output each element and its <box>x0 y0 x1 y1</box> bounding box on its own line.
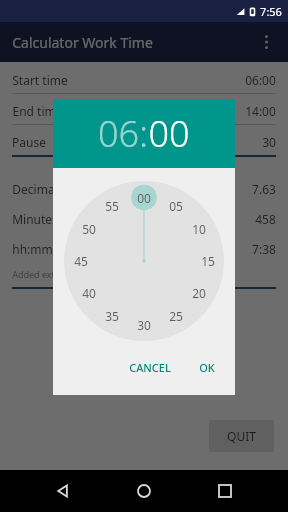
staticText: 7.63 <box>252 181 276 197</box>
staticText: 45 <box>74 253 88 269</box>
staticText: 10 <box>192 221 206 237</box>
staticText: 05 <box>169 198 183 214</box>
staticText: 06:00 <box>245 72 276 88</box>
staticText: OK <box>199 360 215 375</box>
staticText: 30 <box>137 317 151 333</box>
staticText: 30 <box>262 134 276 150</box>
button[interactable]: 10 <box>187 217 211 241</box>
staticText: 7:56 <box>260 4 282 19</box>
staticText: 458 <box>255 211 276 227</box>
button[interactable]: 50 <box>77 217 101 241</box>
button[interactable]: 20 <box>187 281 211 305</box>
staticText: 25 <box>169 308 183 324</box>
button[interactable]: Back <box>45 473 81 509</box>
button[interactable]: 05 <box>164 194 188 218</box>
staticText: 06: <box>98 109 148 158</box>
button[interactable]: OK <box>191 354 223 381</box>
button[interactable]: 15 <box>196 249 220 273</box>
staticText: CANCEL <box>129 360 171 375</box>
staticText: 35 <box>105 308 119 324</box>
button[interactable]: 35 <box>100 304 124 328</box>
staticText: Minutes <box>12 211 58 227</box>
button[interactable]: Home <box>126 473 162 509</box>
button[interactable]: 00 <box>148 109 190 158</box>
button[interactable]: 06: <box>98 109 148 158</box>
button[interactable]: 00 <box>132 186 156 210</box>
button[interactable]: 45 <box>69 249 93 273</box>
staticText: End time <box>12 103 63 119</box>
staticText: 40 <box>82 285 96 301</box>
staticText: Calculator Work Time <box>12 33 153 52</box>
staticText: Decimal <box>12 181 58 197</box>
button[interactable]: More options <box>252 28 280 56</box>
staticText: Pause <box>12 134 46 150</box>
staticText: 20 <box>192 285 206 301</box>
staticText: 50 <box>82 221 96 237</box>
staticText: Start time <box>12 72 68 88</box>
button[interactable]: 55 <box>100 194 124 218</box>
button[interactable]: 30 <box>132 313 156 337</box>
button[interactable]: 40 <box>77 281 101 305</box>
staticText: 00 <box>137 190 151 206</box>
staticText: QUIT <box>227 428 256 444</box>
button[interactable]: 25 <box>164 304 188 328</box>
staticText: 14:00 <box>245 103 276 119</box>
button[interactable]: QUIT <box>209 420 274 452</box>
staticText: 15 <box>201 253 215 269</box>
staticText: 55 <box>105 198 119 214</box>
button[interactable]: CANCEL <box>121 354 179 381</box>
staticText: hh:mm <box>12 241 53 257</box>
staticText: Added extra time <box>12 268 85 280</box>
staticText: 00 <box>148 109 190 158</box>
button[interactable]: Recents <box>207 473 243 509</box>
staticText: 7:38 <box>252 241 276 257</box>
